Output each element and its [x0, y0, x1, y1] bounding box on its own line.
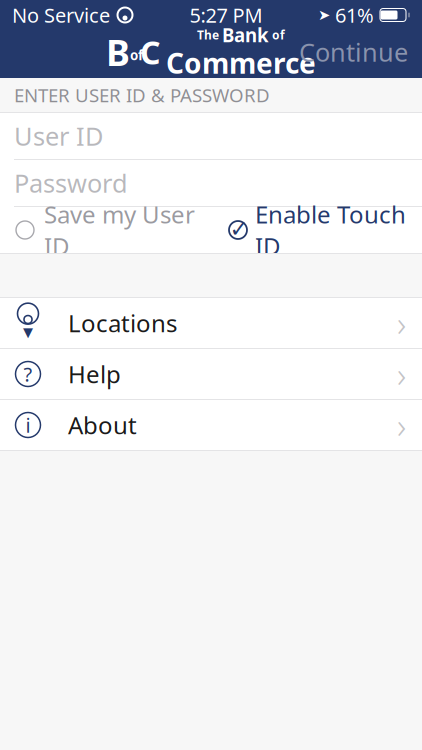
staticText: Locations [68, 307, 177, 339]
staticText: 5:27 PM [189, 2, 262, 28]
staticText: of [130, 46, 143, 64]
staticText: › [397, 402, 406, 448]
button[interactable]: Continue [285, 25, 422, 79]
staticText: Help [68, 358, 121, 390]
staticText: › [397, 351, 406, 397]
staticText: › [397, 300, 406, 346]
staticText: ➤ [318, 7, 330, 23]
staticText: C [140, 31, 161, 73]
staticText: B [106, 28, 130, 76]
staticText: User ID [14, 119, 103, 153]
button[interactable]: ▾ [0, 298, 422, 348]
staticText: Commerce [166, 44, 316, 81]
staticText: Continue [299, 35, 408, 69]
staticText: Password [14, 166, 128, 200]
staticText: Enable Touch ID [255, 198, 406, 262]
staticText: i [25, 412, 30, 438]
staticText: Save my User ID [44, 198, 195, 262]
staticText: 61% [335, 2, 374, 28]
staticText: ▾ [23, 320, 33, 343]
staticText: Bank [222, 22, 269, 47]
button[interactable]: i [0, 400, 422, 450]
staticText: About [68, 409, 137, 441]
staticText: ✓ [229, 216, 248, 242]
button[interactable]: Save my User ID [16, 190, 195, 270]
staticText: ENTER USER ID & PASSWORD [14, 83, 270, 107]
button[interactable]: ? [0, 349, 422, 399]
staticText: No Service [12, 2, 110, 28]
staticText: of [272, 27, 285, 43]
staticText: The [197, 27, 219, 43]
staticText: ? [23, 361, 32, 387]
button[interactable]: ✓ [228, 190, 406, 270]
